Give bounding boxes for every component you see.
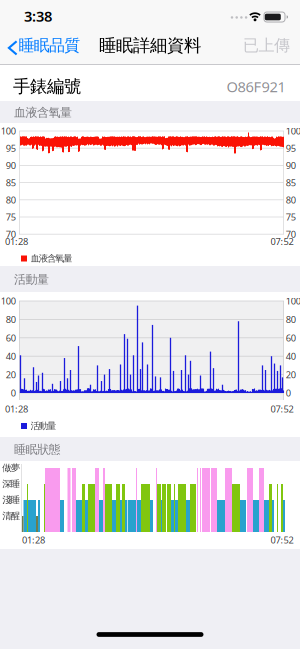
staticText: 手錶編號 (13, 76, 81, 97)
staticText: 已上傳 (243, 36, 290, 55)
staticText: 60 (286, 332, 296, 344)
button[interactable]: 已上傳 (243, 36, 290, 55)
staticText: 80 (6, 313, 16, 326)
staticText: 深睡 (2, 478, 20, 490)
staticText: 3:38 (24, 6, 52, 26)
staticText: 20 (286, 368, 296, 381)
staticText: 80 (286, 194, 296, 206)
staticText: 80 (6, 194, 16, 206)
staticText: 07:52 (270, 235, 293, 248)
staticText: 90 (6, 159, 16, 172)
staticText: 75 (6, 211, 16, 223)
staticText: 100 (286, 295, 300, 307)
staticText: 85 (6, 176, 16, 189)
staticText: 80 (286, 313, 296, 326)
staticText: 0 (286, 387, 291, 399)
staticText: 血液含氧量 (30, 253, 72, 264)
staticText: 01:28 (5, 403, 28, 415)
staticText: 60 (6, 332, 16, 344)
staticText: 70 (6, 228, 16, 240)
staticText: 07:52 (270, 403, 293, 415)
staticText: 01:28 (5, 235, 28, 248)
staticText: O86F921 (226, 77, 285, 96)
staticText: 活動量 (30, 420, 56, 432)
staticText: 活動量 (14, 272, 49, 287)
staticText: 清醒 (2, 510, 20, 522)
staticText: 100 (1, 125, 16, 137)
staticText: 血液含氧量 (14, 105, 72, 120)
staticText: 95 (6, 142, 16, 154)
staticText: 睡眠狀態 (14, 442, 60, 457)
staticText: 40 (6, 350, 16, 362)
staticText: 95 (286, 142, 296, 154)
staticText: 70 (286, 228, 296, 240)
staticText: 75 (286, 211, 296, 223)
staticText: 淺睡 (2, 494, 20, 506)
staticText: 做夢 (2, 462, 20, 474)
staticText: 睡眠詳細資料 (99, 35, 201, 56)
staticText: 100 (1, 295, 16, 307)
staticText: 20 (6, 368, 16, 381)
staticText: 90 (286, 159, 296, 172)
staticText: 40 (286, 350, 296, 362)
staticText: 睡眠品質 (19, 36, 80, 55)
staticText: 01:28 (22, 534, 45, 546)
staticText: 0 (11, 387, 16, 399)
staticText: 100 (286, 125, 300, 137)
staticText: 07:52 (270, 534, 293, 546)
staticText: 85 (286, 176, 296, 189)
button[interactable]: Back (6, 30, 76, 60)
